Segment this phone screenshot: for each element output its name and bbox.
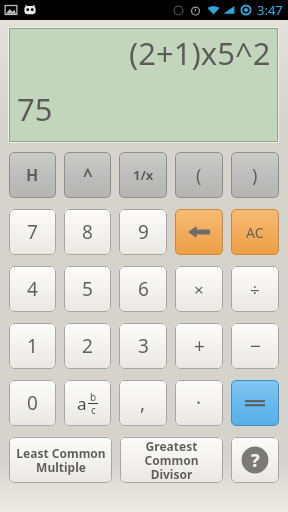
staticText: 7 xyxy=(27,219,38,245)
button[interactable]: Equals xyxy=(231,380,279,426)
button[interactable]: 4 xyxy=(9,266,56,312)
button[interactable]: AC xyxy=(231,209,279,255)
button[interactable]: 1 xyxy=(9,323,56,369)
button[interactable]: Backspace xyxy=(175,209,223,255)
staticText: 8 xyxy=(82,219,93,245)
staticText: 2 xyxy=(82,333,93,359)
staticText: ) xyxy=(252,163,258,188)
button[interactable]: ( xyxy=(175,152,223,198)
button[interactable]: 5 xyxy=(64,266,111,312)
button[interactable]: × xyxy=(175,266,223,312)
staticText: (2+1)x5^2 xyxy=(129,32,271,74)
staticText: · xyxy=(196,390,202,416)
staticText: 1/x xyxy=(133,166,154,184)
button[interactable]: 8 xyxy=(64,209,111,255)
button[interactable]: − xyxy=(231,323,279,369)
button[interactable]: 1/x xyxy=(119,152,167,198)
staticText: , xyxy=(140,390,146,416)
staticText: ^ xyxy=(83,164,93,187)
staticText: + xyxy=(194,333,205,359)
button[interactable]: , xyxy=(119,380,167,426)
button[interactable]: Help xyxy=(231,437,279,483)
button[interactable]: 6 xyxy=(119,266,167,312)
staticText: AC xyxy=(246,223,264,242)
staticText: a xyxy=(77,392,87,415)
staticText: 3:47 xyxy=(257,1,283,19)
button[interactable]: Greatest Common Divisor xyxy=(120,437,223,483)
staticText: 5 xyxy=(82,276,93,302)
staticText: c xyxy=(91,403,96,417)
staticText: − xyxy=(250,333,261,359)
staticText: 9 xyxy=(138,219,149,245)
button[interactable]: · xyxy=(175,380,223,426)
button[interactable]: ÷ xyxy=(231,266,279,312)
button[interactable]: ^ xyxy=(64,152,111,198)
button[interactable]: Least Common Multiple xyxy=(9,437,112,483)
button[interactable]: 7 xyxy=(9,209,56,255)
button[interactable]: Fraction a b over c xyxy=(64,380,111,426)
button[interactable]: 9 xyxy=(119,209,167,255)
staticText: 1 xyxy=(27,333,38,359)
staticText: ( xyxy=(196,163,202,188)
staticText: ÷ xyxy=(250,278,260,301)
staticText: 4 xyxy=(27,276,38,302)
staticText: ? xyxy=(251,448,260,473)
staticText: Least Common Multiple xyxy=(16,445,106,476)
button[interactable]: H xyxy=(9,152,56,198)
staticText: Greatest Common Divisor xyxy=(120,438,223,483)
button[interactable]: ) xyxy=(231,152,279,198)
staticText: 0 xyxy=(27,390,38,416)
button[interactable]: 3 xyxy=(119,323,167,369)
staticText: 75 xyxy=(17,88,53,130)
staticText: 3 xyxy=(138,333,149,359)
staticText: 6 xyxy=(138,276,149,302)
button[interactable]: 2 xyxy=(64,323,111,369)
staticText: b xyxy=(90,390,97,404)
button[interactable]: 0 xyxy=(9,380,56,426)
staticText: × xyxy=(194,278,204,301)
staticText: H xyxy=(26,164,39,186)
button[interactable]: + xyxy=(175,323,223,369)
